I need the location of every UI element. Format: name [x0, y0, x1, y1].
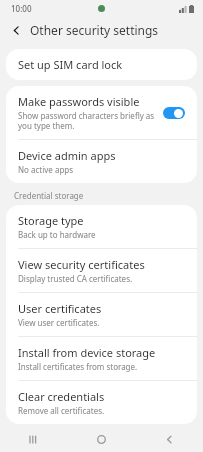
button[interactable]: Storage type — [6, 205, 197, 248]
staticText: Show password characters briefly as you … — [18, 110, 155, 131]
button[interactable]: View security certificates — [6, 249, 197, 292]
staticText: Install certificates from storage. — [18, 361, 138, 372]
button[interactable]: Back — [135, 426, 203, 452]
button[interactable]: Make passwords visible toggle — [163, 107, 185, 119]
button[interactable]: Home — [67, 426, 135, 452]
staticText: Back up to hardware — [18, 229, 96, 240]
staticText: Clear credentials — [18, 389, 105, 404]
button[interactable]: Recent apps — [0, 426, 67, 452]
staticText: View security certificates — [18, 257, 145, 272]
staticText: View user certificates. — [18, 317, 100, 328]
staticText: User certificates — [18, 301, 102, 316]
staticText: Display trusted CA certificates. — [18, 273, 133, 284]
staticText: No active apps — [18, 164, 74, 175]
staticText: Device admin apps — [18, 148, 116, 163]
button[interactable]: Clear credentials — [6, 381, 197, 424]
staticText: Remove all certificates. — [18, 405, 105, 416]
staticText: Storage type — [18, 213, 84, 228]
button[interactable]: User certificates — [6, 293, 197, 336]
button[interactable]: Back — [6, 20, 26, 40]
button[interactable]: Make passwords visible — [6, 86, 197, 139]
button[interactable]: Set up SIM card lock — [6, 49, 197, 80]
staticText: Set up SIM card lock — [18, 57, 123, 72]
button[interactable]: Install from device storage — [6, 337, 197, 380]
staticText: 10:00 — [11, 3, 32, 14]
staticText: Make passwords visible — [18, 94, 140, 109]
button[interactable]: Device admin apps — [6, 140, 197, 183]
staticText: Install from device storage — [18, 345, 156, 360]
staticText: Credential storage — [14, 190, 84, 201]
staticText: Other security settings — [30, 22, 159, 38]
